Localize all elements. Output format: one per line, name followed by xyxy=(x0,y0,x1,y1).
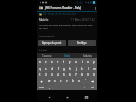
staticText: 3 xyxy=(51,73,53,77)
staticText: 1 xyxy=(39,73,41,77)
button[interactable]: Shift xyxy=(37,78,46,84)
staticText: 5 xyxy=(63,73,65,77)
button[interactable]: Backspace xyxy=(88,78,97,84)
staticText: 7 xyxy=(75,73,77,77)
staticText: w xyxy=(48,79,51,83)
button[interactable]: Home xyxy=(60,93,74,101)
button[interactable]: y xyxy=(67,58,73,65)
button[interactable]: Aperçu du post xyxy=(38,40,66,46)
button[interactable]: Recents xyxy=(79,93,93,101)
button[interactable]: Coucou xyxy=(37,53,57,58)
staticText: x xyxy=(54,79,56,83)
staticText: g xyxy=(63,67,65,71)
button[interactable]: 0 xyxy=(91,72,97,78)
staticText: Le sujet de cette discussion n'est pas t… xyxy=(39,23,95,29)
staticText: d xyxy=(51,67,53,71)
button[interactable]: , xyxy=(46,84,52,90)
button[interactable]: 8 xyxy=(79,72,85,78)
staticText: v xyxy=(66,79,68,83)
button[interactable]: r xyxy=(55,58,61,65)
staticText: 14:32 xyxy=(75,1,84,5)
staticText: k xyxy=(81,67,83,71)
button[interactable]: 9 xyxy=(85,72,91,78)
button[interactable]: . xyxy=(81,84,87,90)
button[interactable]: e xyxy=(49,58,55,65)
button[interactable]: 7 xyxy=(73,72,79,78)
staticText: s xyxy=(45,67,47,71)
button[interactable]: l xyxy=(85,65,91,72)
button[interactable]: k xyxy=(79,65,85,72)
staticText: 4 xyxy=(57,73,59,77)
staticText: ?123 xyxy=(39,86,44,89)
button[interactable]: m xyxy=(91,65,97,72)
staticText: t xyxy=(63,60,65,64)
button[interactable]: z xyxy=(43,58,49,65)
staticText: z xyxy=(45,60,47,64)
staticText: l xyxy=(88,67,89,71)
staticText: Salut xyxy=(64,54,71,58)
staticText: u xyxy=(75,60,77,64)
button[interactable]: p xyxy=(91,58,97,65)
staticText: Re: Sujet de la discussion xyxy=(43,12,76,16)
staticText: 8 xyxy=(81,73,83,77)
button[interactable]: b xyxy=(70,78,76,84)
button[interactable]: q xyxy=(37,65,43,72)
button[interactable]: More options xyxy=(93,5,97,11)
button[interactable]: t xyxy=(61,58,67,65)
staticText: o xyxy=(87,60,89,64)
staticText: ' xyxy=(85,79,86,83)
staticText: Salutas xyxy=(83,54,92,58)
button[interactable]: w xyxy=(46,78,52,84)
button[interactable]: f xyxy=(55,65,61,72)
staticText: 2 xyxy=(45,73,47,77)
staticText: 6 xyxy=(69,73,71,77)
staticText: 17 Mars 2014 11:32 xyxy=(71,18,95,22)
staticText: m xyxy=(93,67,96,71)
button[interactable]: ' xyxy=(82,78,88,84)
staticText: h xyxy=(69,67,71,71)
staticText: b xyxy=(72,79,74,83)
staticText: e xyxy=(51,60,53,64)
staticText: Aperçu du post xyxy=(42,41,62,45)
button[interactable]: Salut xyxy=(57,53,77,58)
button[interactable]: g xyxy=(61,65,67,72)
button[interactable]: 3 xyxy=(49,72,55,78)
staticText: . xyxy=(84,85,85,89)
staticText: Coucou xyxy=(42,54,52,58)
button[interactable]: o xyxy=(85,58,91,65)
button[interactable]: x xyxy=(52,78,58,84)
staticText: n xyxy=(78,79,80,83)
button[interactable]: j xyxy=(73,65,79,72)
button[interactable]: Back xyxy=(42,93,56,101)
button[interactable]: ?123 xyxy=(37,84,46,90)
button[interactable]: Smileys xyxy=(68,40,96,46)
button[interactable]: i xyxy=(79,58,85,65)
staticText: Smileys xyxy=(77,41,87,45)
staticText: p xyxy=(93,60,95,64)
staticText: Commentaire xyxy=(39,34,55,37)
button[interactable]: 2 xyxy=(43,72,49,78)
button[interactable]: u xyxy=(73,58,79,65)
button[interactable]: 4 xyxy=(55,72,61,78)
button[interactable]: s xyxy=(43,65,49,72)
button[interactable]: a xyxy=(37,58,43,65)
staticText: 9 xyxy=(87,73,89,77)
button[interactable]: Enter xyxy=(87,84,97,90)
staticText: Format xyxy=(39,48,48,51)
button[interactable]: Salutas xyxy=(77,53,97,58)
button[interactable]: 6 xyxy=(67,72,73,78)
button[interactable]: c xyxy=(58,78,64,84)
button[interactable]: 5 xyxy=(61,72,67,78)
button[interactable]: 1 xyxy=(37,72,43,78)
button[interactable]: h xyxy=(67,65,73,72)
button[interactable]: n xyxy=(76,78,82,84)
staticText: q xyxy=(39,67,41,71)
staticText: j xyxy=(76,67,77,71)
button[interactable]: v xyxy=(64,78,70,84)
staticText: 0 xyxy=(93,73,95,77)
staticText: f xyxy=(58,67,59,71)
button[interactable]: d xyxy=(49,65,55,72)
staticText: r xyxy=(57,60,59,64)
staticText: y xyxy=(69,60,71,64)
